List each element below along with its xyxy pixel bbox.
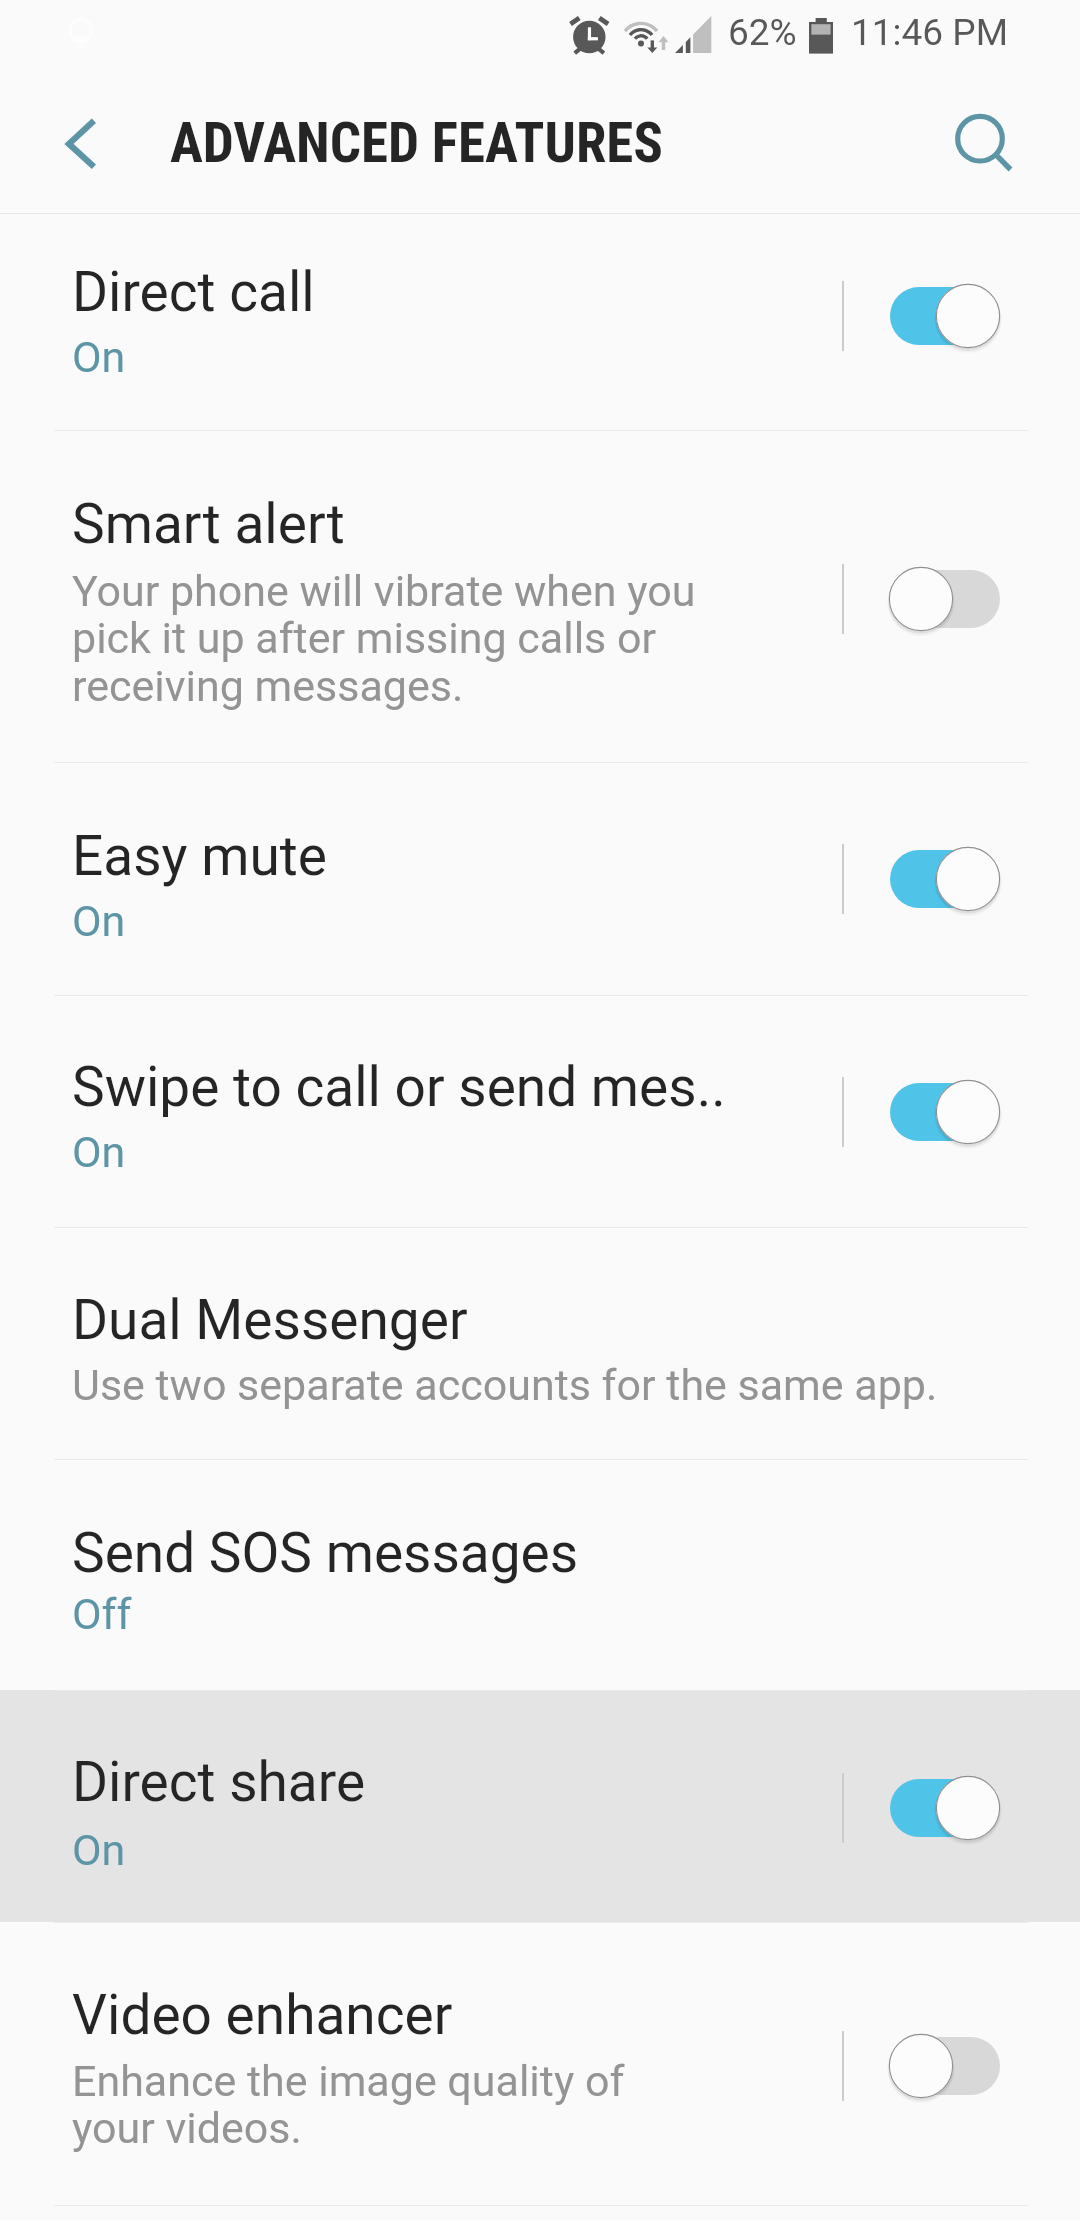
staticText: Swipe to call or send mes.. xyxy=(72,1055,726,1119)
staticText: On xyxy=(72,332,126,382)
staticText: Your phone will vibrate when you xyxy=(72,566,696,616)
staticText: On xyxy=(72,896,126,946)
button[interactable]: Send SOS messages xyxy=(0,1459,1080,1690)
button[interactable]: Swipe to call or send mes.. xyxy=(820,1054,1055,1170)
button[interactable]: Smart alert xyxy=(0,430,1080,762)
staticText: On xyxy=(72,1127,126,1177)
staticText: Send SOS messages xyxy=(72,1521,579,1585)
button[interactable]: Navigate up xyxy=(0,72,168,213)
button[interactable]: Easy mute xyxy=(0,762,1080,995)
button[interactable]: Swipe to call or send mes.. xyxy=(0,995,1080,1227)
button[interactable]: Search xyxy=(930,72,1080,213)
button[interactable]: Video enhancer xyxy=(0,1922,1080,2205)
staticText: Dual Messenger xyxy=(72,1288,468,1352)
staticText: 62% xyxy=(728,11,797,54)
staticText: Smart alert xyxy=(72,492,345,556)
button[interactable]: Direct share xyxy=(0,1690,1080,1922)
button[interactable]: Smart alert xyxy=(820,541,1055,657)
staticText: Enhance the image quality of xyxy=(72,2056,625,2106)
staticText: Direct call xyxy=(72,260,315,324)
staticText: ADVANCED FEATURES xyxy=(170,111,664,175)
staticText: Use two separate accounts for the same a… xyxy=(72,1360,938,1410)
button[interactable]: Direct call xyxy=(0,213,1080,430)
staticText: your videos. xyxy=(72,2103,302,2153)
button[interactable]: Direct share xyxy=(820,1750,1055,1866)
button[interactable]: Dual Messenger xyxy=(0,1227,1080,1459)
button[interactable]: Easy mute xyxy=(820,821,1055,937)
staticText: pick it up after missing calls or xyxy=(72,613,657,663)
staticText: Video enhancer xyxy=(72,1983,453,2047)
staticText: Off xyxy=(72,1589,132,1639)
staticText: Direct share xyxy=(72,1750,366,1814)
staticText: receiving messages. xyxy=(72,661,464,711)
staticText: 11:46 PM xyxy=(851,11,1008,54)
button[interactable]: Direct call xyxy=(820,258,1055,374)
staticText: On xyxy=(72,1825,126,1875)
staticText: Easy mute xyxy=(72,824,327,888)
button[interactable]: Video enhancer xyxy=(820,2008,1055,2124)
